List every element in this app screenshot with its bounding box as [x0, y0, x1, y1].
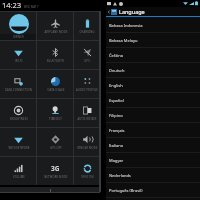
button[interactable]: DATA CONNECTION: [0, 69, 37, 98]
staticText: 14:23: [2, 0, 22, 9]
button[interactable]: TIMEOUT: [37, 98, 74, 127]
staticText: DATA CONNECTION: [5, 88, 32, 92]
button[interactable]: DATA USAGE: [37, 69, 74, 98]
staticText: OWNER: [13, 35, 24, 39]
button[interactable]: OWNER: [0, 11, 37, 40]
staticText: WI-FI: [15, 59, 23, 63]
staticText: Bahasa Indonesia: [109, 23, 143, 28]
staticText: Filipino: [109, 113, 123, 118]
staticText: RINGER MODE: [77, 146, 98, 150]
button[interactable]: GPS OFF: [37, 127, 74, 156]
button[interactable]: English: [106, 78, 200, 93]
button[interactable]: WI-FI: [0, 40, 37, 69]
button[interactable]: BRIGHTNESS: [0, 98, 37, 127]
staticText: Italiano: [109, 143, 124, 148]
button[interactable]: Português (Brasil): [106, 183, 200, 198]
button[interactable]: Bahasa Indonesia: [106, 18, 200, 33]
button[interactable]: VOLUME: [0, 156, 37, 185]
staticText: AUDIO PROFILE: [76, 88, 98, 92]
button[interactable]: Español: [106, 93, 200, 108]
button[interactable]: WIFI NETWORK: [0, 127, 37, 156]
button[interactable]: RINGER MODE: [74, 127, 100, 156]
staticText: DATA USAGE: [47, 88, 65, 92]
button[interactable]: Filipino: [106, 108, 200, 123]
button[interactable]: BLUETOOTH: [37, 40, 74, 69]
staticText: TIMEOUT: [49, 117, 62, 121]
staticText: CHARGING: [79, 30, 95, 34]
staticText: WIFI NETWORK: [8, 146, 30, 150]
staticText: VOLUME: [13, 175, 25, 179]
staticText: AUTO-ROTATE: [77, 117, 97, 121]
button[interactable]: SYNC ON: [74, 156, 100, 185]
staticText: Magyar: [109, 158, 124, 163]
button[interactable]: Čeština: [106, 48, 200, 63]
staticText: Español: [109, 98, 124, 103]
staticText: Čeština: [109, 53, 123, 58]
button[interactable]: AIRPLANE MODE: [37, 11, 74, 40]
staticText: Language: [119, 8, 145, 15]
staticText: SYNC ON: [81, 175, 94, 179]
button[interactable]: Magyar: [106, 153, 200, 168]
button[interactable]: Italiano: [106, 138, 200, 153]
button[interactable]: GPS: [74, 40, 100, 69]
staticText: BRIGHTNESS: [10, 117, 28, 121]
button[interactable]: Bahasa Melayu: [106, 33, 200, 48]
staticText: Deutsch: [109, 68, 125, 73]
staticText: GPS OFF: [50, 146, 62, 150]
staticText: Français: [109, 128, 125, 133]
staticText: NETWORK MODE: [44, 175, 68, 179]
staticText: English: [109, 83, 123, 88]
staticText: GPS: [84, 59, 90, 63]
staticText: Nederlands: [109, 173, 131, 178]
button[interactable]: AUTO-ROTATE: [74, 98, 100, 127]
staticText: AIRPLANE MODE: [44, 30, 68, 34]
staticText: Português (Brasil): [109, 188, 143, 193]
button[interactable]: Nederlands: [106, 168, 200, 183]
button[interactable]: Deutsch: [106, 63, 200, 78]
button[interactable]: CHARGING: [74, 11, 100, 40]
staticText: WED, MAY 7: [24, 5, 39, 9]
button[interactable]: AUDIO PROFILE: [74, 69, 100, 98]
button[interactable]: Français: [106, 123, 200, 138]
staticText: 3G: [51, 164, 60, 173]
staticText: Bahasa Melayu: [109, 38, 138, 43]
button[interactable]: Back: [106, 7, 200, 16]
button[interactable]: 3G: [37, 156, 74, 185]
staticText: BLUETOOTH: [47, 59, 64, 63]
other: Back: [107, 10, 111, 14]
